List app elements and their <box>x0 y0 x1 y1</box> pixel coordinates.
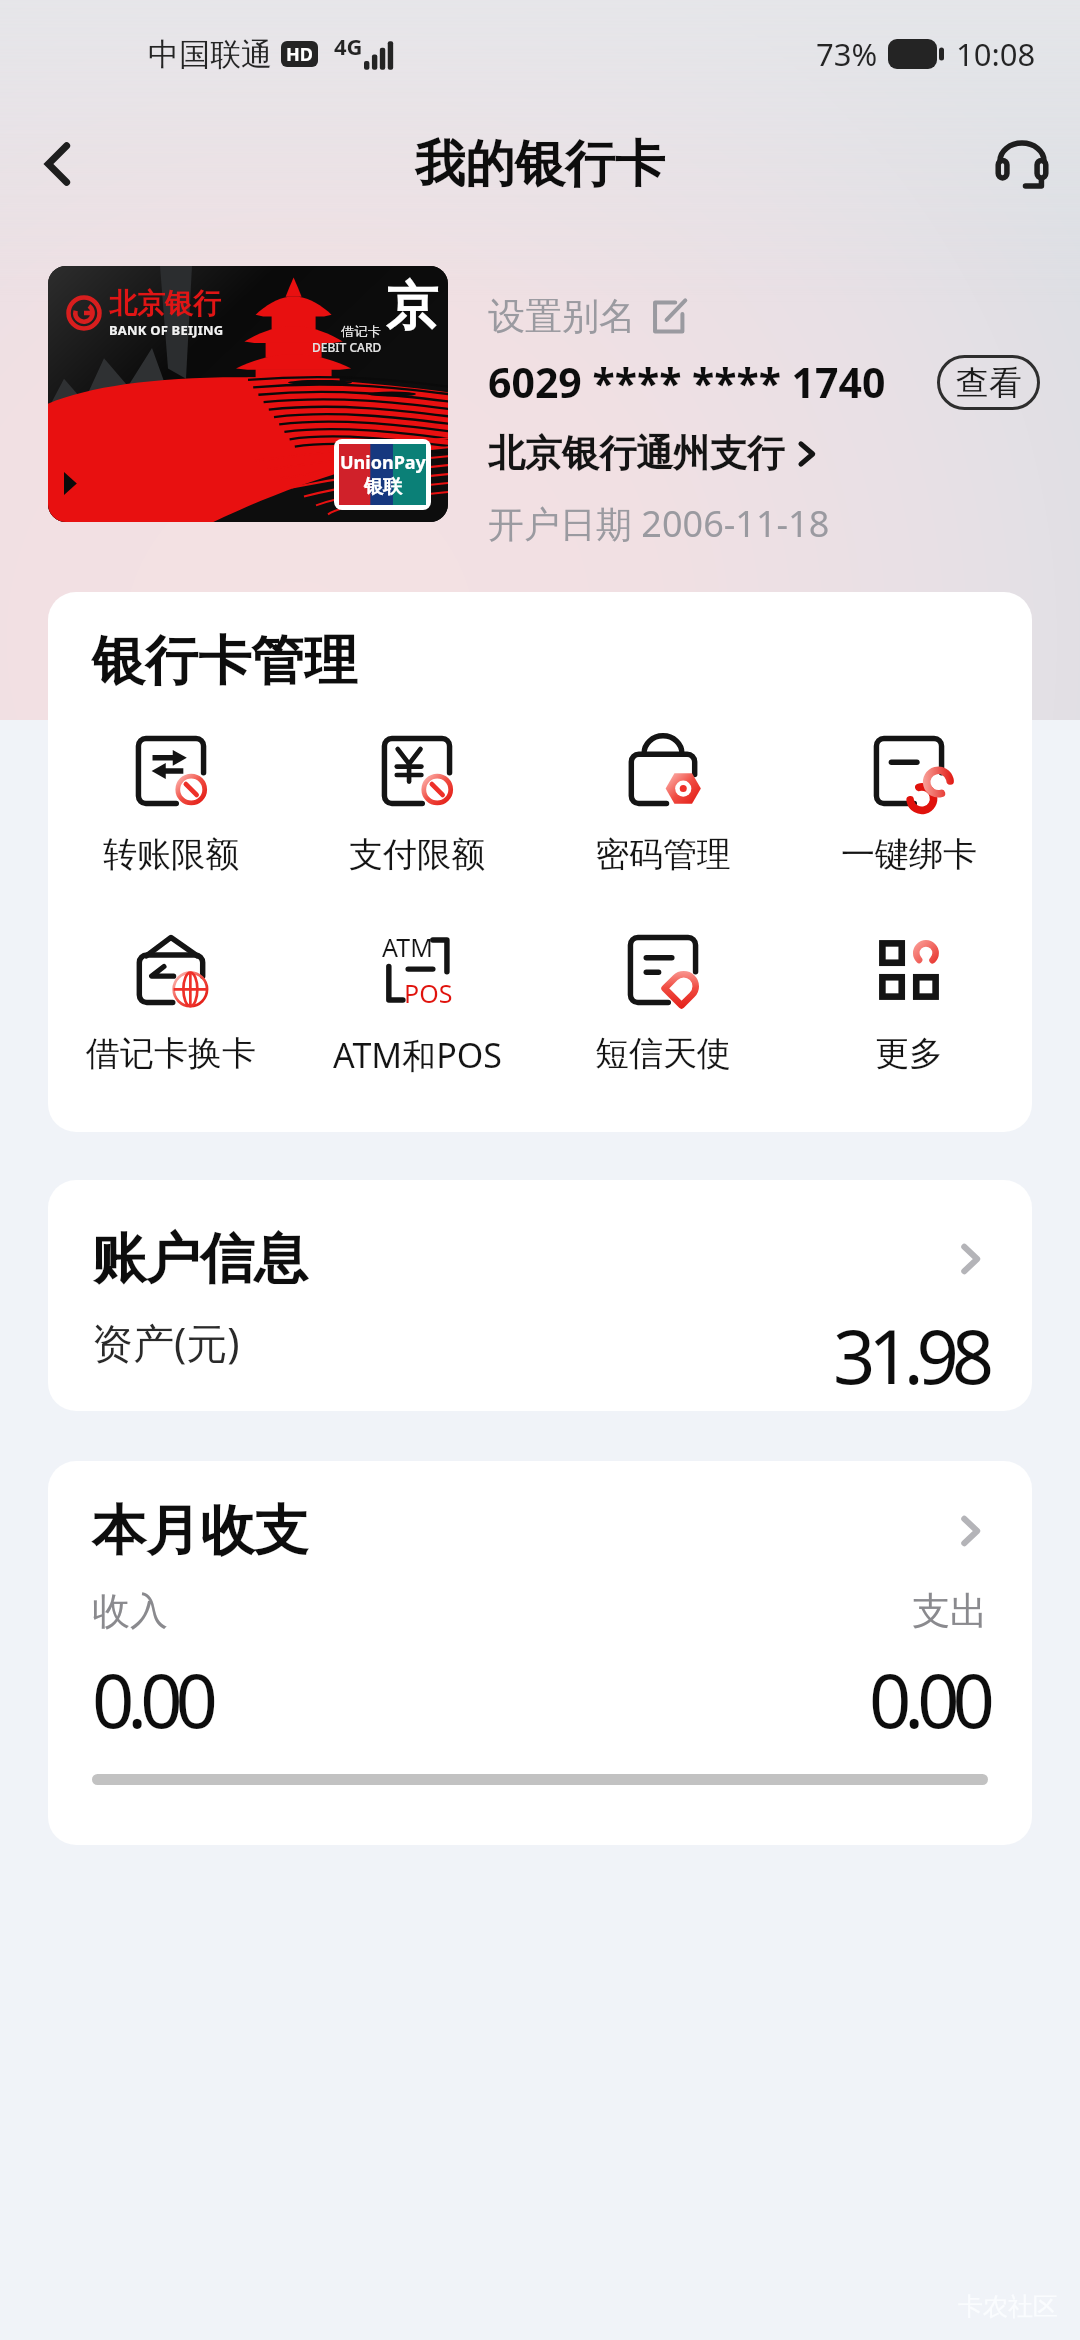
staticText: 31.98 <box>833 1305 988 1406</box>
button[interactable]: 本月收支 <box>48 1461 1032 1845</box>
button[interactable]: 转账限额 <box>48 727 294 876</box>
staticText: 银行卡管理 <box>92 628 357 695</box>
staticText: 本月收支 <box>92 1497 308 1565</box>
staticText: 支出 <box>912 1587 988 1635</box>
staticText: 支付限额 <box>349 833 485 876</box>
staticText: 更多 <box>875 1032 943 1075</box>
button[interactable]: 支付限额 <box>294 727 540 876</box>
staticText: 开户日期 2006-11-18 <box>488 499 830 548</box>
staticText: 账户信息 <box>92 1225 308 1293</box>
staticText: 一键绑卡 <box>841 833 977 876</box>
staticText: 银联 <box>364 475 402 499</box>
button[interactable]: 一键绑卡 <box>786 727 1032 876</box>
button[interactable]: 设置别名 <box>488 293 686 340</box>
button[interactable]: Back <box>0 108 116 220</box>
staticText: HD <box>286 42 313 67</box>
button[interactable]: 密码管理 <box>540 727 786 876</box>
staticText: UnionPay <box>340 450 426 475</box>
staticText: 资产(元) <box>92 1314 240 1370</box>
staticText: 0.00 <box>92 1649 211 1750</box>
staticText: ATM和POS <box>333 1032 502 1078</box>
staticText: 0.00 <box>869 1649 988 1750</box>
button[interactable]: 更多 <box>786 926 1032 1075</box>
button[interactable]: 账户信息 <box>48 1180 1032 1411</box>
staticText: DEBIT CARD <box>312 339 382 355</box>
button[interactable]: ATM <box>294 926 540 1078</box>
staticText: 京 <box>386 274 438 340</box>
staticText: POS <box>404 976 453 1010</box>
staticText: 设置别名 <box>488 293 636 340</box>
staticText: 4G <box>334 31 363 61</box>
button[interactable]: Bank card <box>48 266 448 522</box>
staticText: ATM <box>382 930 433 964</box>
button[interactable]: 借记卡换卡 <box>48 926 294 1075</box>
staticText: 查看 <box>956 362 1022 404</box>
staticText: 密码管理 <box>595 833 731 876</box>
staticText: 10:08 <box>956 33 1036 75</box>
button[interactable]: Customer service <box>964 108 1080 220</box>
button[interactable]: 短信天使 <box>540 926 786 1075</box>
staticText: 卡农社区 <box>958 2291 1058 2322</box>
staticText: 我的银行卡 <box>415 133 665 196</box>
staticText: 短信天使 <box>595 1032 731 1075</box>
staticText: 收入 <box>92 1587 168 1635</box>
staticText: BANK OF BEIJING <box>109 321 224 339</box>
staticText: 中国联通 <box>148 35 272 74</box>
staticText: 北京银行通州支行 <box>488 430 784 477</box>
staticText: 6029 **** **** 1740 <box>488 354 886 410</box>
staticText: 北京银行 <box>109 286 221 321</box>
button[interactable]: 北京银行通州支行 <box>488 430 820 477</box>
staticText: 借记卡 <box>341 323 382 339</box>
button[interactable]: 查看 <box>937 355 1040 410</box>
staticText: 转账限额 <box>103 833 239 876</box>
staticText: 借记卡换卡 <box>86 1032 256 1075</box>
staticText: 73% <box>816 33 878 75</box>
